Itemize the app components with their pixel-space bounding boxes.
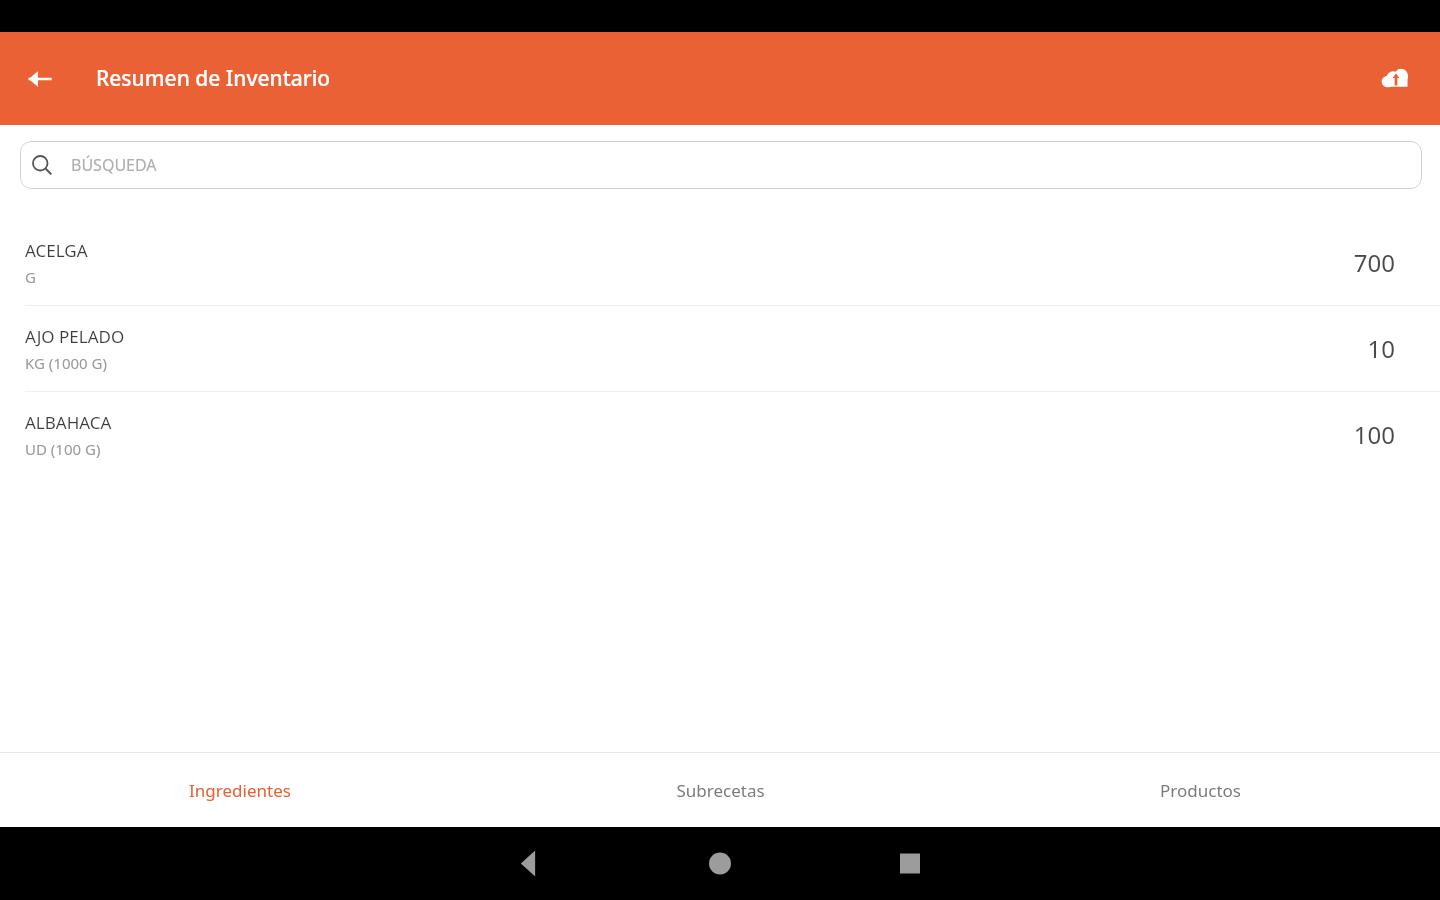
button[interactable]: ACELGA: [0, 220, 1440, 305]
button[interactable]: Upload to cloud: [1369, 52, 1423, 106]
button[interactable]: AJO PELADO: [0, 306, 1440, 391]
button[interactable]: Ingredientes: [0, 753, 480, 827]
staticText: ALBAHACA: [25, 411, 112, 434]
button[interactable]: Subrecetas: [480, 753, 960, 827]
staticText: Subrecetas: [676, 779, 765, 802]
button[interactable]: BÚSQUEDA: [20, 141, 1422, 189]
staticText: Productos: [1160, 779, 1241, 802]
button[interactable]: ALBAHACA: [0, 392, 1440, 477]
staticText: 10: [1367, 332, 1395, 365]
staticText: G: [25, 267, 36, 287]
button[interactable]: Back: [14, 53, 66, 105]
staticText: KG (1000 G): [25, 353, 107, 373]
staticText: 100: [1353, 418, 1395, 451]
staticText: 700: [1353, 246, 1395, 279]
button[interactable]: Productos: [960, 753, 1440, 827]
staticText: Resumen de Inventario: [96, 64, 331, 93]
staticText: Ingredientes: [189, 779, 291, 802]
staticText: UD (100 G): [25, 439, 101, 459]
staticText: BÚSQUEDA: [71, 154, 157, 176]
staticText: ACELGA: [25, 239, 88, 262]
staticText: AJO PELADO: [25, 325, 125, 348]
